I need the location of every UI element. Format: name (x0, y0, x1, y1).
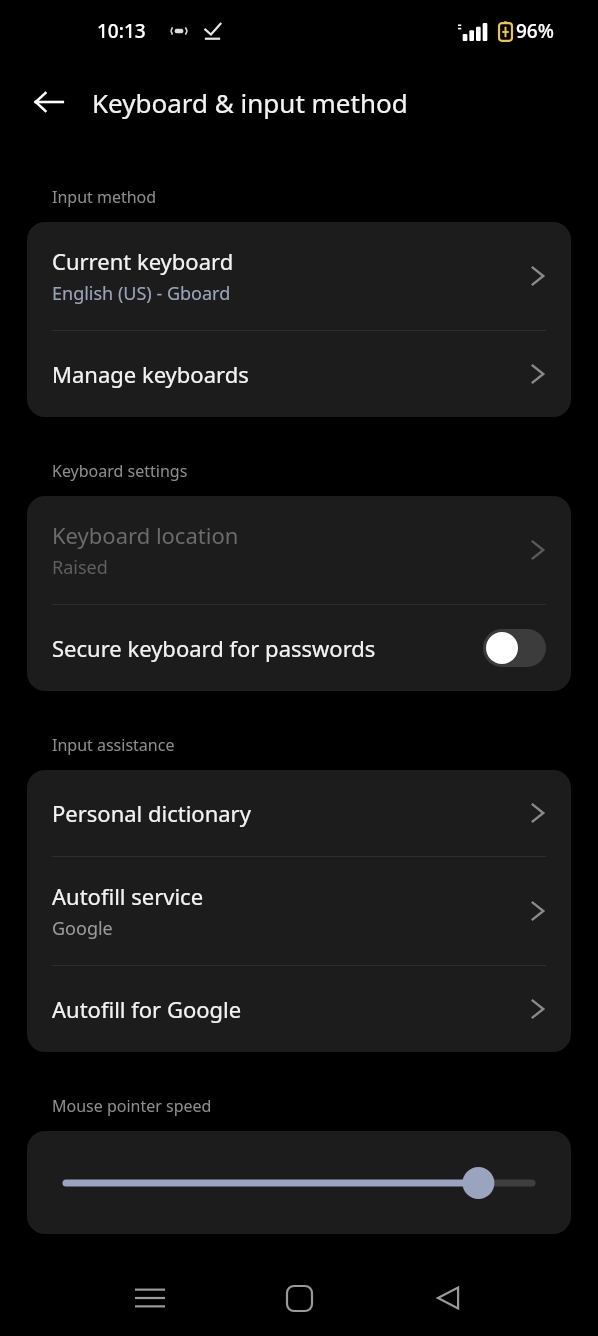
staticText: Manage keyboards (52, 359, 249, 389)
staticText: Autofill for Google (52, 994, 242, 1024)
staticText: Input method (52, 186, 157, 208)
button[interactable]: Mouse pointer speed (27, 1131, 571, 1234)
staticText: Google (52, 916, 113, 941)
button[interactable]: Secure keyboard for passwords (27, 605, 571, 691)
staticText: Autofill service (52, 881, 204, 911)
staticText: Input assistance (52, 734, 175, 756)
staticText: English (US) - Gboard (52, 281, 231, 306)
button[interactable]: Back (418, 1268, 478, 1328)
staticText: 96% (516, 18, 554, 44)
button[interactable]: Keyboard location (27, 496, 571, 604)
button[interactable]: Autofill service (27, 857, 571, 965)
staticText: Mouse pointer speed (52, 1095, 212, 1117)
button[interactable]: Autofill for Google (27, 966, 571, 1052)
button[interactable]: Personal dictionary (27, 770, 571, 856)
button[interactable]: Current keyboard (27, 222, 571, 330)
staticText: 10:13 (97, 18, 146, 44)
staticText: Personal dictionary (52, 798, 251, 828)
staticText: Raised (52, 555, 108, 580)
button[interactable]: Secure keyboard toggle, off (483, 629, 546, 667)
staticText: Current keyboard (52, 246, 234, 276)
button[interactable]: Recent apps (120, 1268, 180, 1328)
button[interactable]: Back (22, 75, 76, 129)
button[interactable]: Home (269, 1268, 329, 1328)
staticText: Keyboard settings (52, 460, 188, 482)
button[interactable]: Manage keyboards (27, 331, 571, 417)
staticText: Keyboard location (52, 520, 239, 550)
staticText: Keyboard & input method (92, 85, 408, 120)
staticText: Secure keyboard for passwords (52, 633, 483, 663)
